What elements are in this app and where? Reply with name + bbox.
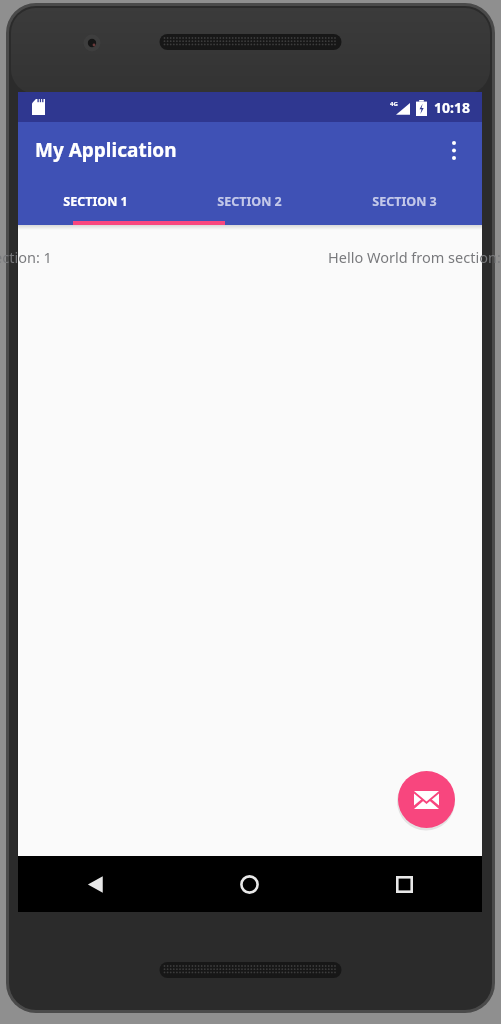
button[interactable]: Home [172, 856, 327, 912]
staticText: Hello World from section: 2 [328, 247, 501, 267]
staticText: 4G [390, 100, 398, 108]
button[interactable]: SECTION 2 [172, 178, 327, 225]
button[interactable]: Back [18, 856, 172, 912]
staticText: My Application [35, 137, 177, 163]
staticText: 10:18 [434, 98, 470, 117]
staticText: SECTION 1 [63, 193, 128, 210]
button[interactable]: SECTION 1 [18, 178, 172, 225]
button[interactable]: Compose email [398, 771, 455, 828]
staticText: SECTION 2 [217, 193, 282, 210]
button[interactable]: Recent apps [327, 856, 482, 912]
button[interactable]: SECTION 3 [327, 178, 482, 225]
button[interactable]: More options [432, 128, 476, 172]
staticText: Hello World from section: 1 [0, 247, 52, 267]
staticText: SECTION 3 [372, 193, 437, 210]
